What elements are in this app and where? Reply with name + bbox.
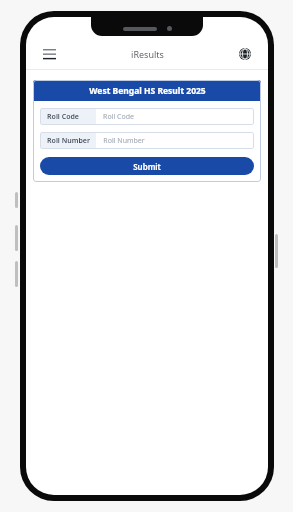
button[interactable]: Open menu — [38, 43, 60, 65]
button[interactable]: Language — [234, 43, 256, 65]
button[interactable]: Submit — [40, 157, 254, 175]
staticText: West Bengal HS Result 2025 — [89, 85, 206, 97]
staticText: Submit — [133, 161, 161, 172]
staticText: Roll Number — [103, 136, 145, 146]
staticText: Roll Code — [47, 112, 79, 122]
button[interactable]: Roll Code — [40, 108, 254, 125]
staticText: iResults — [131, 48, 164, 60]
staticText: Roll Number — [47, 136, 90, 146]
staticText: Roll Code — [103, 112, 134, 122]
button[interactable]: Roll Number — [40, 132, 254, 149]
